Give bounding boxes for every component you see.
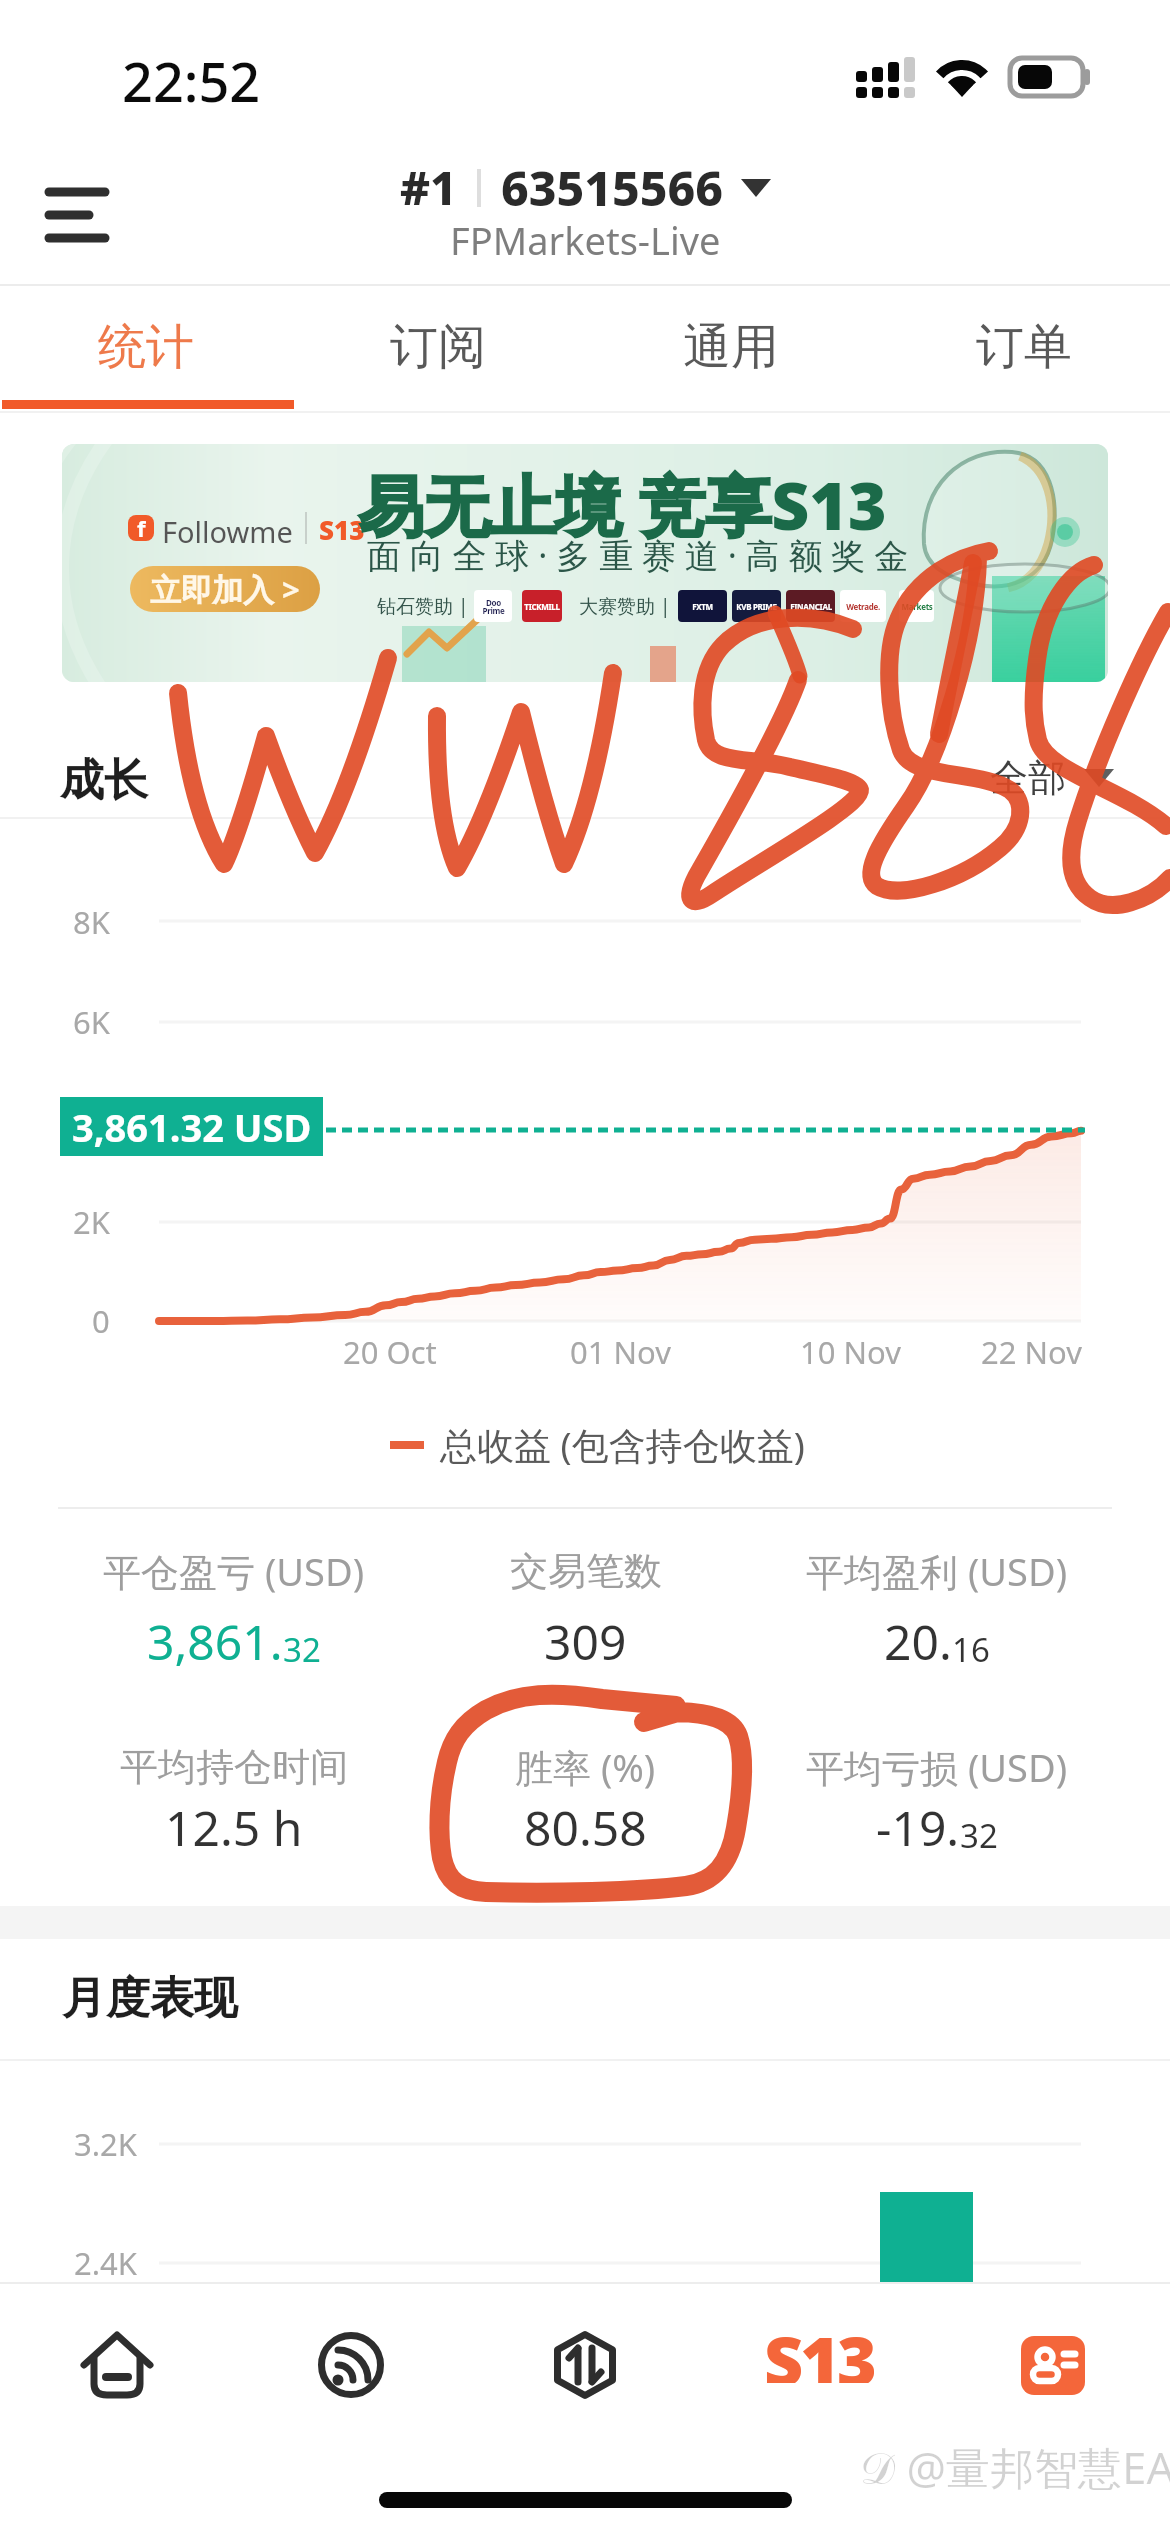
staticText: 通用: [683, 317, 779, 377]
staticText: 面 向 全 球 · 多 重 赛 道 · 高 额 奖 金: [367, 532, 909, 578]
staticText: 月度表现: [62, 1971, 238, 2026]
button[interactable]: f: [62, 444, 1108, 682]
staticText: 80.58: [524, 1795, 647, 1860]
staticText: 大赛赞助 |: [579, 593, 671, 619]
staticText: 成长: [60, 753, 148, 808]
button[interactable]: 订阅: [292, 285, 584, 412]
staticText: 3,861.32 USD: [72, 1101, 312, 1153]
staticText: 钻石赞助 |: [377, 593, 469, 619]
staticText: 8K: [73, 901, 110, 943]
staticText: TICKMILL: [524, 601, 560, 612]
staticText: 总收益 (包含持仓收益): [440, 1419, 805, 1470]
button[interactable]: Trade: [468, 2330, 702, 2400]
staticText: 22 Nov: [981, 1331, 1082, 1373]
staticText: -19.: [876, 1795, 960, 1860]
staticText: #1: [400, 156, 457, 219]
staticText: 平均持仓时间: [120, 1743, 348, 1791]
staticText: 2K: [73, 1201, 110, 1243]
staticText: 32: [960, 1813, 998, 1858]
button[interactable]: 统计: [0, 285, 292, 412]
staticText: 12.5 h: [165, 1795, 303, 1860]
button[interactable]: 立即加入 >: [130, 566, 320, 612]
staticText: 32: [283, 1627, 321, 1672]
staticText: Wetrade.: [846, 601, 880, 612]
staticText: 订阅: [390, 317, 486, 377]
staticText: 309: [544, 1609, 627, 1674]
staticText: 01 Nov: [570, 1331, 671, 1373]
button[interactable]: Profile: [936, 2330, 1170, 2400]
button[interactable]: 订单: [877, 285, 1170, 412]
staticText: 3.2K: [74, 2123, 137, 2165]
button[interactable]: Signals: [234, 2330, 468, 2400]
staticText: 22:52: [122, 44, 261, 118]
staticText: 统计: [98, 317, 194, 377]
button[interactable]: Menu: [22, 165, 130, 265]
staticText: 20 Oct: [343, 1331, 437, 1373]
staticText: 平均亏损 (USD): [806, 1741, 1068, 1793]
staticText: 平仓盈亏 (USD): [103, 1545, 365, 1597]
staticText: Doo Prime: [482, 597, 505, 616]
staticText: S13: [764, 2313, 874, 2383]
button[interactable]: Home: [0, 2330, 234, 2400]
staticText: 16: [952, 1627, 990, 1672]
staticText: 立即加入 >: [150, 568, 300, 610]
staticText: 交易笔数: [510, 1547, 662, 1595]
staticText: 平均盈利 (USD): [806, 1545, 1068, 1597]
staticText: 3,861.: [147, 1609, 283, 1674]
button[interactable]: 全部: [990, 754, 1114, 802]
staticText: Markets: [901, 601, 933, 612]
staticText: 0: [92, 1300, 110, 1342]
staticText: FINANCIAL: [790, 601, 832, 612]
staticText: 20.: [884, 1609, 952, 1674]
staticText: FPMarkets-Live: [450, 214, 721, 266]
staticText: 易无止境 竞享S13: [358, 459, 887, 549]
staticText: 6K: [73, 1001, 110, 1043]
staticText: FXTM: [692, 601, 713, 612]
staticText: 订单: [976, 317, 1072, 377]
staticText: 𝒟 @量邦智慧EA: [860, 2437, 1170, 2497]
staticText: 63515566: [501, 155, 723, 220]
staticText: KVB PRIME: [736, 601, 777, 612]
staticText: 2.4K: [74, 2242, 137, 2284]
button[interactable]: 通用: [584, 285, 877, 412]
staticText: Followme: [162, 512, 293, 544]
button[interactable]: #1: [400, 155, 771, 272]
staticText: 全部: [990, 754, 1066, 802]
staticText: 10 Nov: [800, 1331, 901, 1373]
button[interactable]: S13: [702, 2330, 936, 2400]
staticText: S13: [319, 512, 365, 544]
staticText: f: [137, 515, 146, 539]
staticText: 胜率 (%): [515, 1741, 656, 1793]
